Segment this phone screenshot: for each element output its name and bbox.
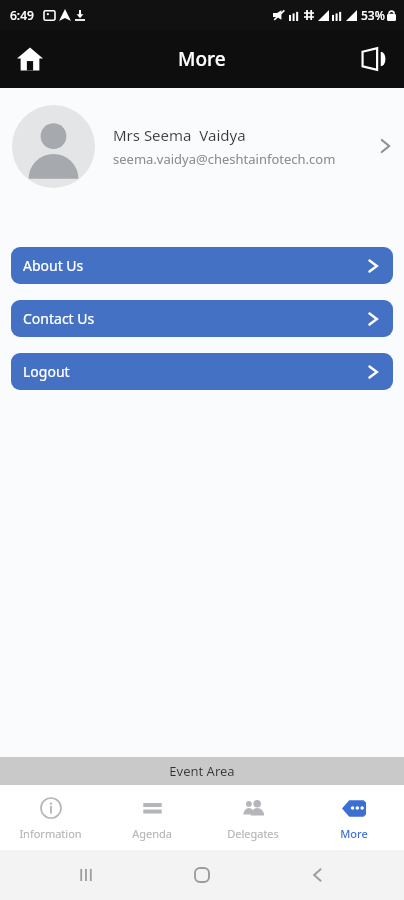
- staticText: Agenda: [132, 826, 172, 841]
- staticText: Mrs Seema Vaidya: [113, 125, 246, 145]
- staticText: Event Area: [169, 762, 235, 780]
- button[interactable]: Delegates: [202, 785, 303, 850]
- button[interactable]: Announcements: [352, 37, 396, 81]
- staticText: About Us: [23, 256, 365, 275]
- staticText: 6:49: [10, 7, 34, 23]
- staticText: Contact Us: [23, 309, 365, 328]
- button[interactable]: Home: [8, 37, 52, 81]
- staticText: seema.vaidya@cheshtainfotech.com: [113, 150, 336, 168]
- staticText: Logout: [23, 362, 365, 381]
- staticText: Delegates: [227, 826, 279, 841]
- button[interactable]: Logout: [11, 353, 393, 390]
- button[interactable]: Contact Us: [11, 300, 393, 337]
- button[interactable]: Mrs Seema Vaidya: [0, 88, 404, 204]
- staticText: 53%: [361, 7, 385, 23]
- button[interactable]: Home: [172, 850, 232, 900]
- staticText: Information: [19, 826, 82, 841]
- button[interactable]: Back: [288, 850, 348, 900]
- button[interactable]: About Us: [11, 247, 393, 284]
- button[interactable]: More: [303, 785, 404, 850]
- button[interactable]: Information: [0, 785, 101, 850]
- button[interactable]: Agenda: [101, 785, 202, 850]
- button[interactable]: Recents: [56, 850, 116, 900]
- staticText: More: [340, 826, 368, 841]
- staticText: More: [178, 46, 226, 72]
